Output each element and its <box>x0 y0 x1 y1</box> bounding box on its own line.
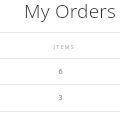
staticText: ITEMS <box>53 43 75 50</box>
staticText: 6 <box>58 67 63 77</box>
button[interactable]: ITEMS <box>0 33 120 58</box>
button[interactable]: 6 <box>0 59 120 84</box>
button[interactable]: 3 <box>0 85 120 111</box>
button[interactable]: My Orders <box>0 0 120 32</box>
staticText: My Orders <box>24 0 117 24</box>
staticText: 3 <box>58 93 63 103</box>
